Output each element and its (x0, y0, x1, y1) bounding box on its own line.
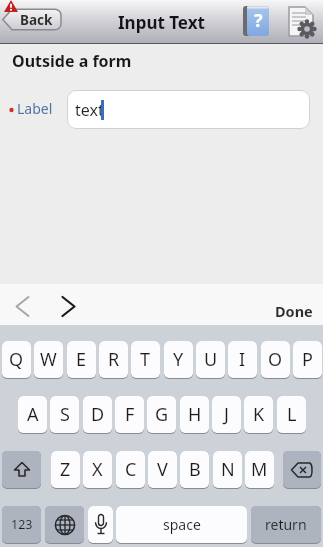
staticText: space (163, 515, 201, 534)
button[interactable]: A (18, 396, 47, 433)
button[interactable]: L (277, 396, 306, 433)
button[interactable]: Done (275, 301, 313, 321)
staticText: text (75, 99, 104, 121)
button[interactable]: F (115, 396, 144, 433)
staticText: C (125, 457, 137, 482)
button[interactable] (283, 451, 321, 488)
staticText: P (302, 347, 313, 372)
staticText: A (27, 402, 39, 427)
staticText: S (60, 402, 70, 427)
staticText: L (287, 402, 297, 427)
staticText: G (155, 402, 169, 427)
staticText: H (188, 402, 202, 427)
button[interactable] (15, 296, 33, 318)
button[interactable]: S (50, 396, 79, 433)
staticText: return (265, 515, 307, 534)
button[interactable]: 123 (2, 506, 41, 543)
staticText: V (157, 457, 168, 482)
button[interactable] (2, 451, 41, 488)
button[interactable]: U (196, 341, 225, 378)
staticText: I (239, 347, 246, 372)
button[interactable]: text (67, 90, 310, 129)
button[interactable]: W (34, 341, 63, 378)
staticText: 123 (11, 516, 33, 533)
button[interactable]: B (180, 451, 209, 488)
button[interactable]: Q (2, 341, 31, 378)
button[interactable]: O (261, 341, 290, 378)
button[interactable] (288, 6, 314, 37)
button[interactable]: H (180, 396, 209, 433)
button[interactable]: M (245, 451, 274, 488)
button[interactable] (88, 506, 113, 543)
button[interactable]: E (67, 341, 96, 378)
button[interactable]: return (251, 506, 321, 543)
staticText: F (125, 402, 135, 427)
button[interactable]: D (83, 396, 112, 433)
staticText: W (40, 347, 57, 372)
button[interactable]: G (147, 396, 176, 433)
staticText: X (92, 457, 103, 482)
staticText: Q (9, 347, 24, 372)
button[interactable]: space (116, 506, 247, 543)
button[interactable]: Back (2, 8, 62, 31)
staticText: Input Text (118, 11, 205, 34)
button[interactable] (60, 296, 78, 318)
button[interactable]: C (116, 451, 145, 488)
staticText: Back (20, 11, 53, 29)
staticText: E (76, 347, 87, 372)
staticText: U (204, 347, 218, 372)
button[interactable]: I (228, 341, 257, 378)
staticText: R (108, 347, 120, 372)
staticText: Z (60, 457, 71, 482)
staticText: M (251, 457, 268, 482)
button[interactable]: X (83, 451, 112, 488)
staticText: J (224, 402, 229, 427)
staticText: ? (254, 8, 263, 33)
button[interactable]: R (99, 341, 128, 378)
button[interactable]: Z (51, 451, 80, 488)
button[interactable]: ? (243, 6, 269, 36)
staticText: K (253, 402, 265, 427)
staticText: Y (173, 347, 184, 372)
button[interactable] (45, 506, 84, 543)
staticText: O (268, 347, 283, 372)
button[interactable]: V (148, 451, 177, 488)
staticText: Done (275, 301, 313, 321)
button[interactable]: Label (17, 99, 53, 118)
staticText: B (189, 457, 201, 482)
button[interactable]: K (244, 396, 273, 433)
button[interactable]: P (293, 341, 322, 378)
staticText: N (221, 457, 235, 482)
staticText: T (140, 347, 151, 372)
button[interactable]: J (212, 396, 241, 433)
staticText: Outside a form (12, 50, 132, 72)
button[interactable]: Y (164, 341, 193, 378)
button[interactable]: N (213, 451, 242, 488)
staticText: D (91, 402, 105, 427)
button[interactable]: T (131, 341, 160, 378)
